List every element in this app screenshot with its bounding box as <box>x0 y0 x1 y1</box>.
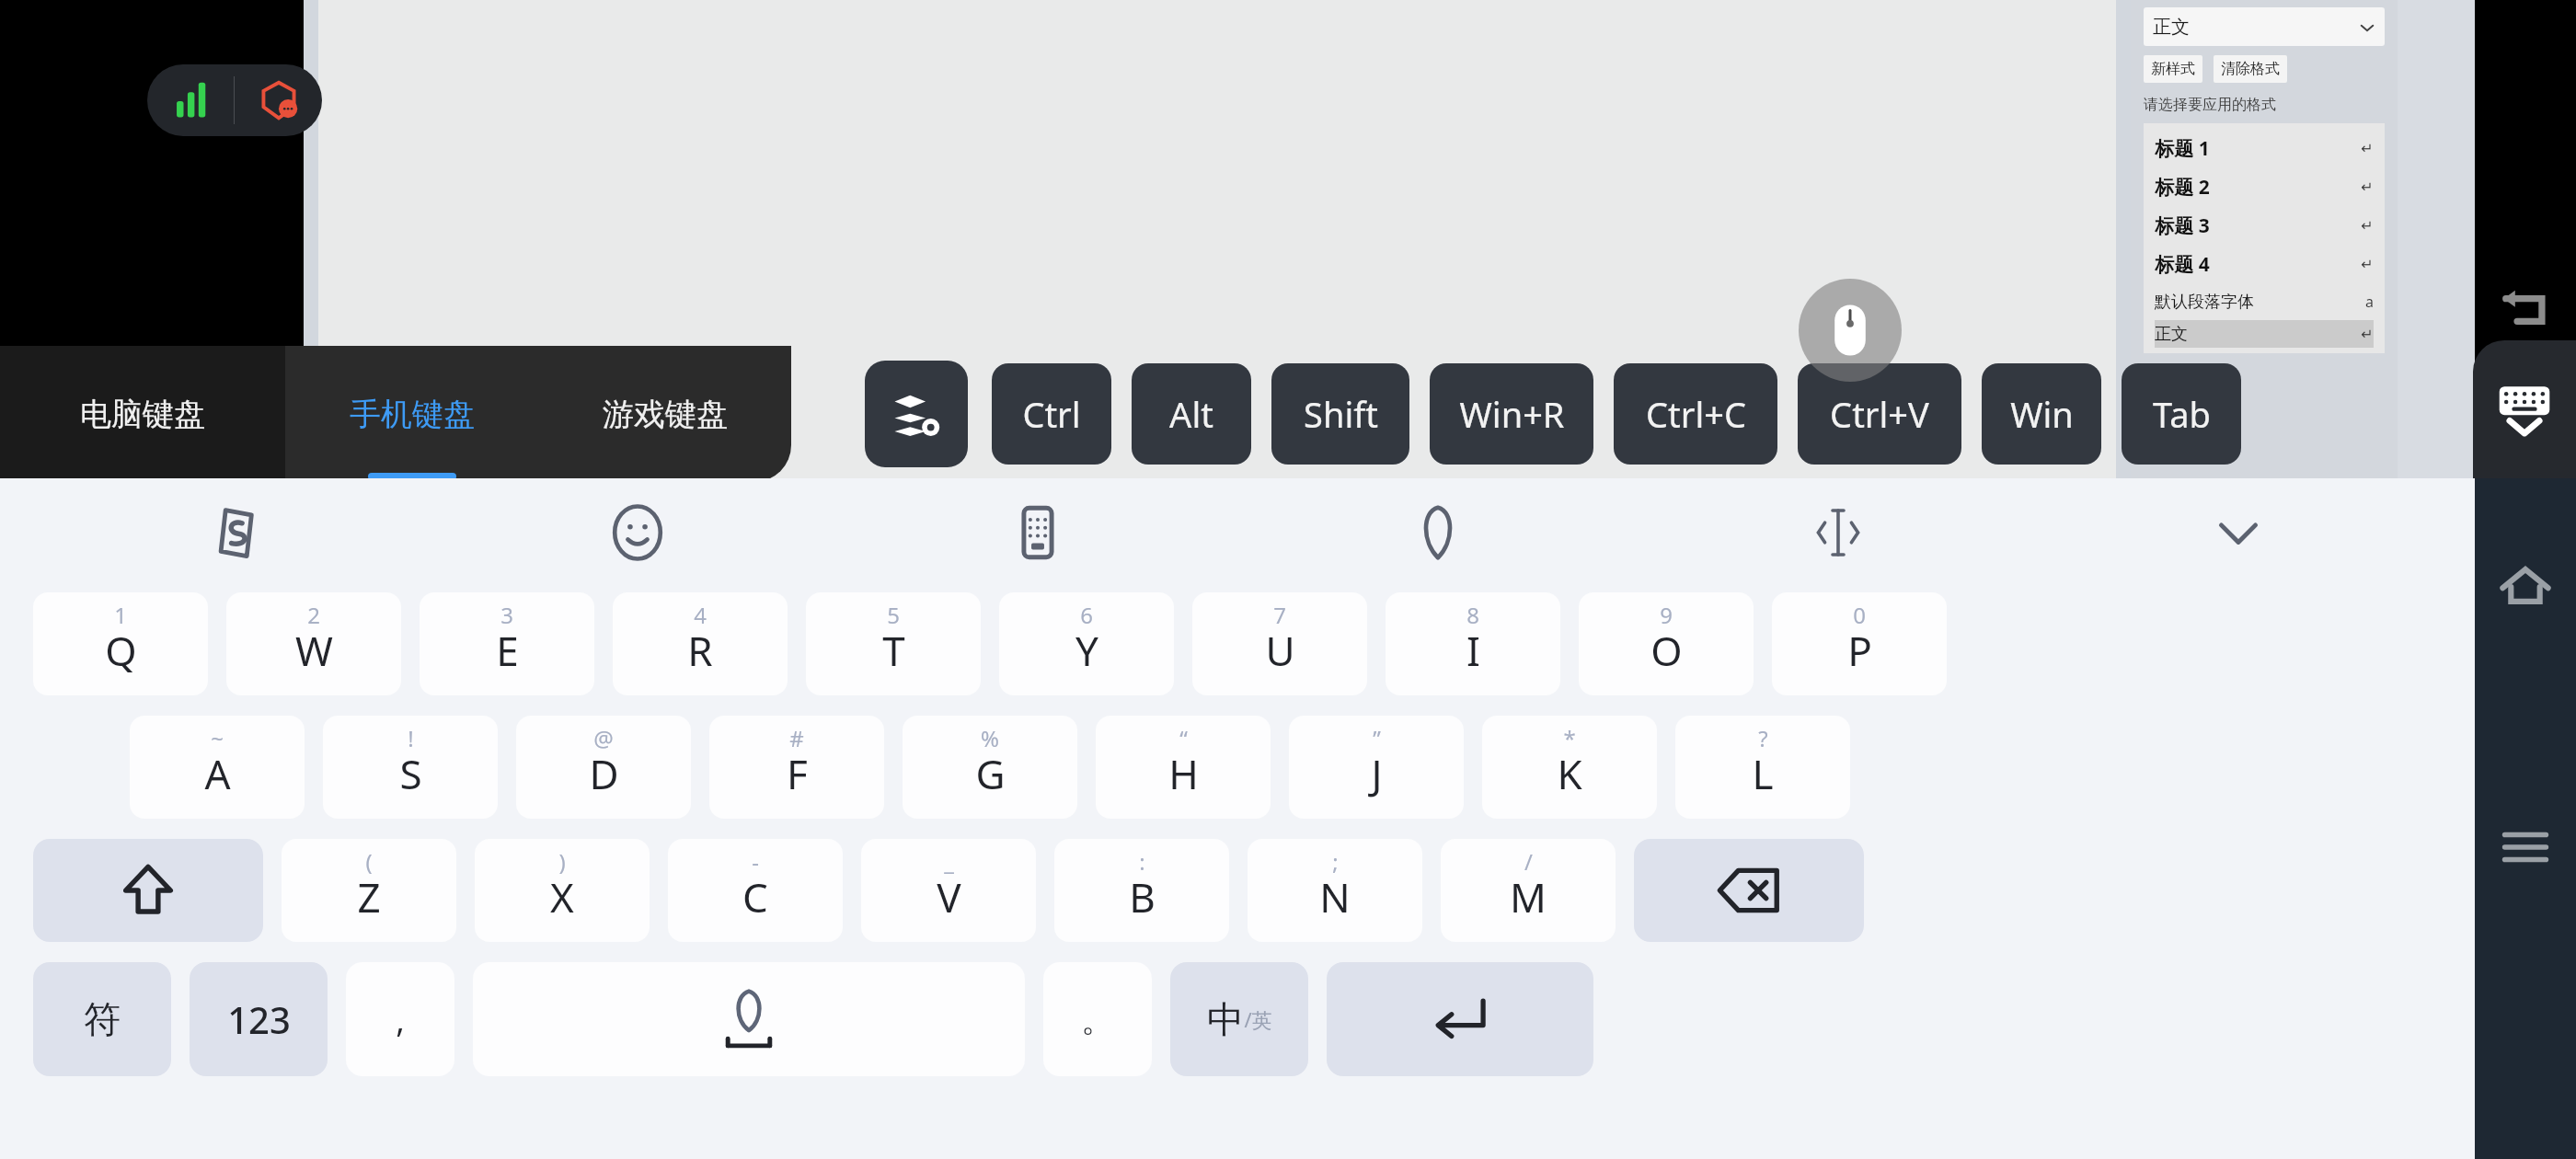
button[interactable]: - <box>668 839 843 942</box>
staticText: A <box>204 746 231 801</box>
button[interactable]: Hide keyboard <box>2473 340 2576 478</box>
button[interactable]: 符 <box>33 962 171 1076</box>
button[interactable]: ) <box>475 839 650 942</box>
button[interactable]: , <box>346 962 454 1076</box>
button[interactable]: “ <box>1096 716 1271 819</box>
staticText: C <box>742 869 768 924</box>
button[interactable]: Backspace <box>1634 839 1864 942</box>
button[interactable]: 2 <box>226 592 401 695</box>
button[interactable]: ; <box>1248 839 1422 942</box>
button[interactable]: 9 <box>1579 592 1754 695</box>
button[interactable]: : <box>1054 839 1229 942</box>
staticText: 中 <box>1207 996 1244 1042</box>
button[interactable]: 游戏键盘 <box>538 346 791 482</box>
button[interactable]: 4 <box>613 592 788 695</box>
staticText: T <box>882 623 905 678</box>
staticText: # <box>789 723 804 753</box>
button[interactable]: Tab <box>2122 363 2241 465</box>
button[interactable]: 1 <box>33 592 208 695</box>
button[interactable]: Ctrl <box>992 363 1111 465</box>
button[interactable]: 正文 <box>2144 7 2385 46</box>
staticText: 符 <box>84 996 121 1042</box>
staticText: 游戏键盘 <box>603 395 728 434</box>
button[interactable]: Keyboard layout <box>837 478 1237 587</box>
button[interactable]: 默认段落字体 <box>2155 283 2374 320</box>
button[interactable]: 3 <box>420 592 594 695</box>
button[interactable]: ( <box>282 839 456 942</box>
button[interactable]: ! <box>323 716 498 819</box>
staticText: 标题 4 <box>2155 251 2210 278</box>
button[interactable]: 5 <box>806 592 981 695</box>
button[interactable]: # <box>709 716 884 819</box>
button[interactable]: 0 <box>1772 592 1947 695</box>
staticText: Z <box>357 869 381 924</box>
button[interactable]: 清除格式 <box>2221 55 2280 83</box>
staticText: 7 <box>1273 600 1286 630</box>
button[interactable]: Shift <box>1271 363 1409 465</box>
button[interactable]: Emoji <box>437 478 837 587</box>
button[interactable]: Home <box>2487 547 2564 625</box>
button[interactable]: 中 <box>1170 962 1308 1076</box>
button[interactable]: Collapse <box>2038 478 2438 587</box>
staticText: ↵ <box>2361 178 2374 196</box>
button[interactable]: Status <box>147 64 322 136</box>
button[interactable]: 标题 3 <box>2155 206 2374 245</box>
button[interactable]: Space <box>473 962 1025 1076</box>
button[interactable]: / <box>1441 839 1616 942</box>
staticText: K <box>1557 746 1582 801</box>
staticText: Win+R <box>1459 390 1565 438</box>
staticText: D <box>589 746 619 801</box>
button[interactable]: Ctrl+V <box>1798 363 1961 465</box>
button[interactable]: Enter <box>1327 962 1593 1076</box>
staticText: 标题 3 <box>2155 212 2210 239</box>
button[interactable]: Win+R <box>1430 363 1593 465</box>
button[interactable]: ~ <box>130 716 305 819</box>
button[interactable]: Ctrl+C <box>1614 363 1777 465</box>
button[interactable]: Win <box>1982 363 2101 465</box>
button[interactable]: 7 <box>1192 592 1367 695</box>
button[interactable]: Shift <box>33 839 263 942</box>
staticText: 3 <box>500 600 513 630</box>
button[interactable]: ” <box>1289 716 1464 819</box>
button[interactable]: Shortcut settings <box>865 361 968 467</box>
staticText: 正文 <box>2155 324 2188 345</box>
staticText: - <box>752 846 759 877</box>
staticText: 5 <box>887 600 900 630</box>
button[interactable]: 正文 <box>2155 320 2374 348</box>
staticText: 8 <box>1466 600 1479 630</box>
button[interactable]: Voice input <box>1237 478 1638 587</box>
button[interactable]: @ <box>516 716 691 819</box>
button[interactable]: Cursor <box>1638 478 2038 587</box>
button[interactable]: 新样式 <box>2151 55 2195 83</box>
button[interactable]: 标题 2 <box>2155 167 2374 206</box>
button[interactable]: _ <box>861 839 1036 942</box>
button[interactable]: Menu <box>2487 809 2564 886</box>
staticText: “ <box>1179 723 1188 753</box>
staticText: ( <box>365 846 373 877</box>
staticText: 0 <box>1853 600 1866 630</box>
button[interactable]: % <box>903 716 1077 819</box>
staticText: Shift <box>1304 390 1378 438</box>
button[interactable]: 标题 1 <box>2155 129 2374 167</box>
staticText: 新样式 <box>2151 60 2195 78</box>
staticText: 123 <box>227 994 291 1044</box>
button[interactable]: * <box>1482 716 1657 819</box>
button[interactable]: Alt <box>1132 363 1251 465</box>
staticText: M <box>1510 869 1547 924</box>
button[interactable]: 标题 4 <box>2155 245 2374 283</box>
staticText: 9 <box>1660 600 1673 630</box>
button[interactable]: 6 <box>999 592 1174 695</box>
button[interactable]: Back <box>2491 276 2559 344</box>
button[interactable]: 。 <box>1043 962 1152 1076</box>
staticText: , <box>396 997 405 1042</box>
button[interactable]: 8 <box>1386 592 1560 695</box>
button[interactable]: 手机键盘 <box>285 346 538 482</box>
button[interactable]: ? <box>1675 716 1850 819</box>
button[interactable]: 123 <box>190 962 328 1076</box>
staticText: 。 <box>1081 999 1114 1040</box>
staticText: E <box>496 623 519 678</box>
button[interactable]: Mouse <box>1799 279 1902 382</box>
button[interactable]: Sogou <box>37 478 437 587</box>
button[interactable]: 电脑键盘 <box>0 346 285 482</box>
